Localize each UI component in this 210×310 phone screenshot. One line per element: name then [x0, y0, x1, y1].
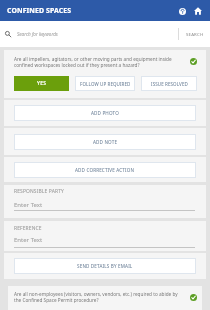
button[interactable]: SEARCH: [179, 21, 210, 47]
staticText: YES: [37, 80, 47, 87]
button[interactable]: SEND DETAILS BY EMAIL: [14, 258, 196, 274]
button[interactable]: ISSUE RESOLVED: [141, 76, 197, 91]
staticText: FOLLOW UP REQUIRED: [80, 81, 131, 87]
staticText: Enter Text: [14, 236, 43, 244]
button[interactable]: FOLLOW UP REQUIRED: [75, 76, 135, 91]
staticText: Enter Text: [14, 201, 43, 209]
staticText: Are all impellers, agitators, or other m…: [14, 56, 178, 68]
button[interactable]: ADD NOTE: [14, 134, 196, 150]
staticText: SEND DETAILS BY EMAIL: [77, 263, 133, 269]
staticText: SEARCH: [186, 31, 204, 37]
staticText: ADD PHOTO: [91, 110, 119, 116]
button[interactable]: Home: [192, 5, 204, 17]
staticText: CONFINED SPACES: [7, 6, 72, 15]
staticText: Search for keywords: [17, 31, 58, 37]
staticText: ISSUE RESOLVED: [151, 81, 188, 87]
button[interactable]: ADD PHOTO: [14, 105, 196, 121]
staticText: Are all non-employees (visitors, owners,…: [14, 291, 178, 303]
button[interactable]: YES: [14, 76, 69, 91]
staticText: ADD NOTE: [93, 139, 118, 145]
staticText: RESPONSIBLE PARTY: [14, 188, 64, 195]
button[interactable]: Help: [176, 5, 188, 17]
button[interactable]: ADD CORRECTIVE ACTION: [14, 162, 196, 178]
staticText: ADD CORRECTIVE ACTION: [75, 167, 135, 173]
staticText: REFERENCE: [14, 225, 42, 232]
